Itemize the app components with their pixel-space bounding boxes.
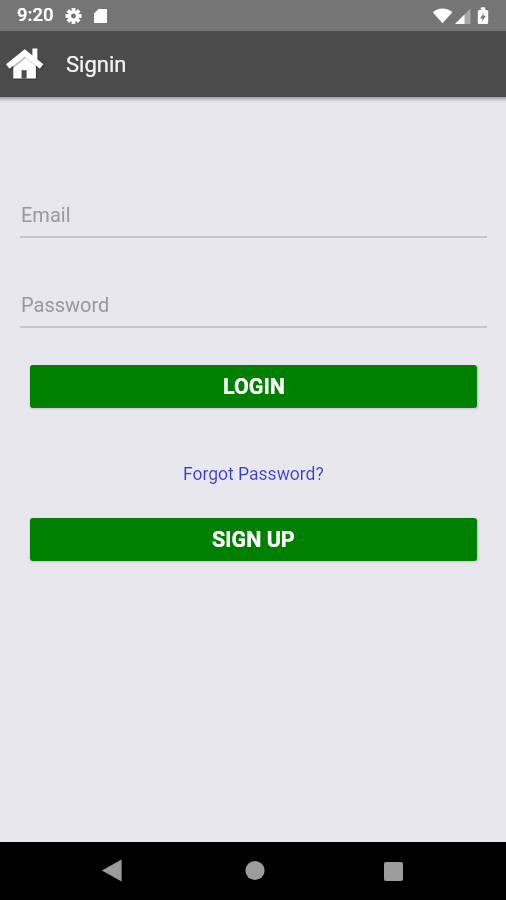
button[interactable] (87, 846, 135, 894)
button[interactable]: Forgot Password? (183, 464, 324, 485)
button[interactable]: LOGIN (30, 365, 477, 408)
staticText: SIGN UP (212, 527, 295, 552)
staticText: LOGIN (223, 374, 285, 399)
button[interactable]: SIGN UP (30, 518, 477, 561)
button[interactable] (231, 846, 279, 894)
staticText: Password (21, 293, 110, 316)
button[interactable] (4, 44, 48, 84)
staticText: 9:20 (17, 4, 54, 26)
staticText: Signin (66, 52, 127, 78)
button[interactable]: Email (20, 195, 487, 238)
button[interactable]: Password (20, 285, 487, 328)
button[interactable] (369, 846, 417, 894)
staticText: Email (21, 203, 71, 226)
